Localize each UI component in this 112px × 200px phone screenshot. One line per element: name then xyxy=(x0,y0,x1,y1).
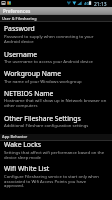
staticText: NETBIOS Name xyxy=(4,89,54,98)
staticText: Preferences xyxy=(3,8,31,14)
button[interactable] xyxy=(0,66,112,86)
staticText: App Behavior xyxy=(2,134,28,139)
staticText: associated to Wifi Access Points you hav… xyxy=(4,178,87,184)
staticText: device sleep mode xyxy=(4,154,41,160)
staticText: other computers xyxy=(4,102,38,108)
staticText: The name of your Windows workgroup xyxy=(4,78,82,84)
button[interactable] xyxy=(0,140,112,160)
staticText: Username xyxy=(4,50,38,59)
staticText: Workgroup Name xyxy=(4,69,62,78)
staticText: Configure Filesharing service to start o… xyxy=(4,173,99,179)
staticText: Android device xyxy=(4,38,34,44)
button[interactable] xyxy=(0,110,112,130)
staticText: Password to supply when connecting to yo… xyxy=(4,33,94,39)
staticText: approved. xyxy=(4,182,25,188)
staticText: 4G xyxy=(84,1,90,6)
button[interactable] xyxy=(0,46,112,66)
button[interactable] xyxy=(0,22,112,46)
staticText: Settings that affect wifi performance ba… xyxy=(4,149,105,155)
staticText: Other Fileshare Settings xyxy=(4,114,81,123)
staticText: Additional Fileshare configuration setti… xyxy=(4,122,89,128)
staticText: Wake Locks xyxy=(4,140,42,149)
button[interactable] xyxy=(0,160,112,190)
staticText: 21:13 xyxy=(94,1,107,8)
staticText: The username to access your Android devi… xyxy=(4,58,93,64)
staticText: User & Filesharing xyxy=(2,16,37,21)
staticText: Wifi White List xyxy=(4,164,50,173)
button[interactable] xyxy=(0,86,112,110)
staticText: Password xyxy=(4,24,35,33)
staticText: Hostname that will show up in Network br… xyxy=(4,97,107,103)
